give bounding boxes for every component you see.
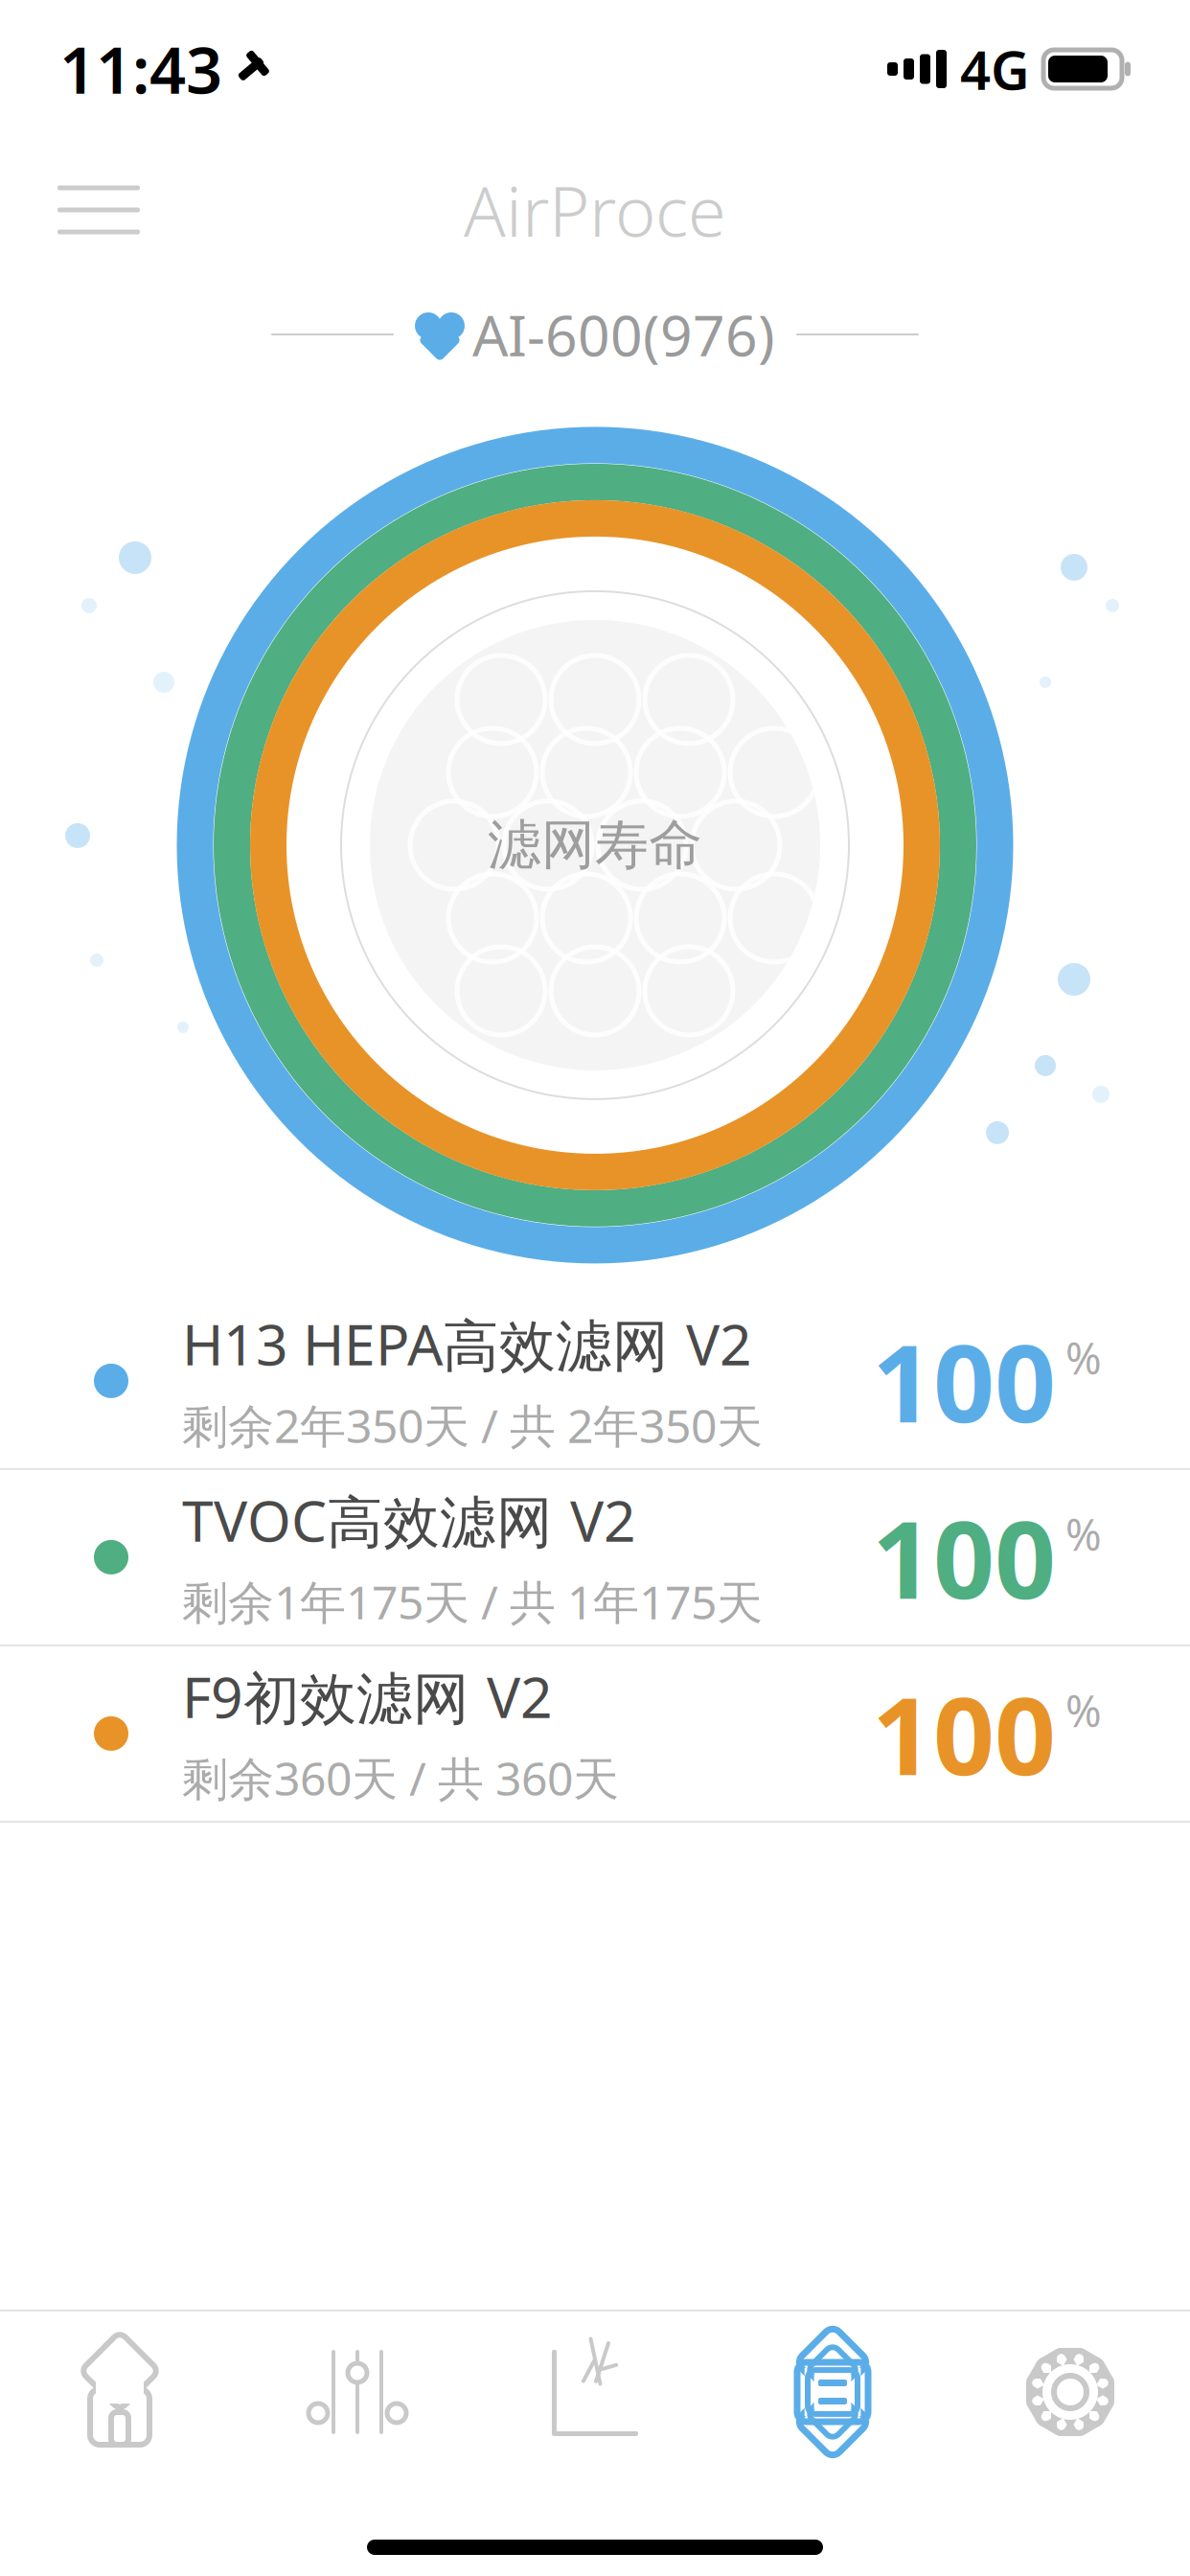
staticText: AirProce (464, 164, 726, 256)
staticText: 11:43 (59, 27, 222, 111)
staticText: AI-600(976) (472, 297, 775, 372)
staticText: % (1065, 1505, 1102, 1563)
button[interactable]: Controls (239, 2311, 476, 2472)
button[interactable]: TVOC高效滤网 V2 (0, 1470, 1190, 1644)
button[interactable]: H13 HEPA高效滤网 V2 (0, 1294, 1190, 1468)
staticText: % (1065, 1329, 1102, 1386)
button[interactable]: Home (1, 2311, 239, 2472)
staticText: H13 HEPA高效滤网 V2 (182, 1306, 752, 1381)
button[interactable]: Settings (951, 2311, 1189, 2472)
staticText: 100 (872, 1662, 1056, 1805)
staticText: 滤网寿命 (488, 812, 702, 878)
staticText: 剩余2年350天 / 共 2年350天 (182, 1394, 763, 1456)
button[interactable]: F9初效滤网 V2 (0, 1646, 1190, 1821)
staticText: 剩余360天 / 共 360天 (182, 1747, 619, 1808)
staticText: F9初效滤网 V2 (182, 1659, 553, 1734)
staticText: 100 (872, 1310, 1056, 1452)
staticText: TVOC高效滤网 V2 (182, 1482, 636, 1557)
staticText: 4G (960, 33, 1030, 105)
button[interactable]: Statistics (476, 2311, 714, 2472)
button[interactable]: AI-600(976) (271, 284, 919, 385)
staticText: % (1065, 1681, 1102, 1739)
button[interactable]: Menu (38, 166, 159, 253)
staticText: 剩余1年175天 / 共 1年175天 (182, 1571, 763, 1632)
button[interactable]: Filters (714, 2311, 951, 2472)
staticText: 100 (872, 1486, 1056, 1628)
